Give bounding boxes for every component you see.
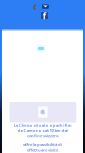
button[interactable]: Email [42, 4, 49, 9]
staticText: offre la possibilità di [23, 142, 62, 147]
staticText: da Como e a soli 10 km dal [17, 128, 67, 133]
staticText: confine svizzero [27, 133, 58, 138]
button[interactable]: Facebook [41, 12, 48, 19]
button[interactable]: Language [36, 45, 45, 52]
staticText: effettuare visite [27, 147, 58, 152]
button[interactable]: Call [33, 4, 37, 10]
staticText: La Clinica situata a pochi Km [13, 122, 71, 128]
staticText: f [42, 9, 46, 22]
